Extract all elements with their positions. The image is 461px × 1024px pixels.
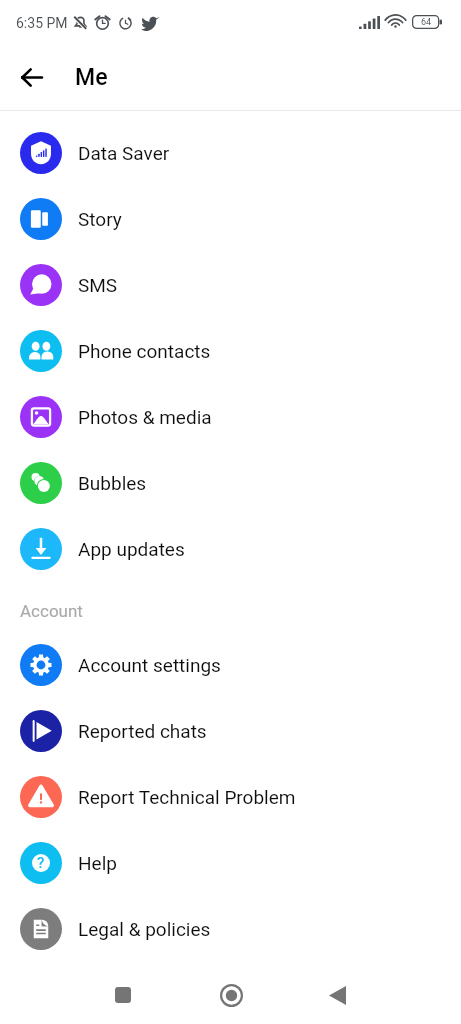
button[interactable]: Back	[10, 55, 54, 99]
staticText: Bubbles	[78, 472, 147, 494]
staticText: Story	[78, 208, 122, 230]
staticText: Account settings	[78, 654, 221, 676]
staticText: Legal & policies	[78, 918, 211, 940]
staticText: SMS	[78, 274, 118, 296]
staticText: 64	[421, 17, 432, 28]
button[interactable]: Bubbles	[0, 450, 461, 516]
button[interactable]: Legal & policies	[0, 896, 461, 962]
staticText: Reported chats	[78, 720, 207, 742]
staticText: Help	[78, 852, 117, 874]
button[interactable]: App updates	[0, 516, 461, 582]
button[interactable]: Report Technical Problem	[0, 764, 461, 830]
button[interactable]: Story	[0, 186, 461, 252]
button[interactable]: Reported chats	[0, 698, 461, 764]
button[interactable]: Recent apps	[100, 972, 146, 1018]
staticText: Me	[75, 64, 108, 91]
button[interactable]: Back	[314, 972, 360, 1018]
staticText: Photos & media	[78, 406, 212, 428]
button[interactable]: Photos & media	[0, 384, 461, 450]
staticText: ?	[37, 854, 45, 871]
staticText: App updates	[78, 538, 185, 560]
button[interactable]: Data Saver	[0, 120, 461, 186]
button[interactable]: SMS	[0, 252, 461, 318]
staticText: Data Saver	[78, 142, 170, 164]
button[interactable]: Phone contacts	[0, 318, 461, 384]
button[interactable]: ?	[0, 830, 461, 896]
button[interactable]: Account settings	[0, 632, 461, 698]
staticText: Account	[20, 601, 83, 621]
staticText: Report Technical Problem	[78, 786, 296, 808]
staticText: 6:35 PM	[16, 15, 68, 31]
staticText: Phone contacts	[78, 340, 211, 362]
button[interactable]: Home	[208, 972, 254, 1018]
